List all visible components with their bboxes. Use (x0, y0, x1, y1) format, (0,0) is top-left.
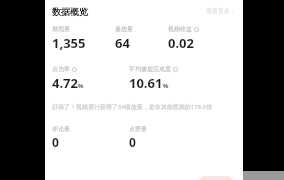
staticText: 播放量 (115, 25, 133, 33)
staticText: 0 (52, 134, 59, 150)
staticText: 数据概览 (52, 6, 88, 17)
staticText: % (78, 82, 84, 90)
button[interactable]: 点击率 (52, 65, 129, 92)
staticText: 评论量 (52, 125, 70, 133)
button[interactable]: 操作 (199, 176, 233, 180)
staticText: 点赞量 (129, 125, 147, 133)
staticText: 10.61 (129, 74, 163, 92)
button[interactable]: 展现量 (52, 25, 115, 52)
staticText: 展现量 (52, 25, 70, 33)
staticText: 0 (129, 134, 136, 150)
button[interactable]: 播放量 (115, 25, 168, 52)
staticText: 4.72 (52, 74, 78, 92)
button[interactable]: 查看更多 (204, 5, 237, 17)
staticText: 64 (115, 34, 130, 52)
button[interactable]: 点赞量 (129, 125, 237, 150)
staticText: 平均播放完成度 (129, 65, 171, 73)
staticText: 点击率 (52, 65, 70, 73)
staticText: % (163, 82, 169, 90)
staticText: 查看更多 (206, 7, 230, 15)
staticText: 视频收益 (168, 25, 192, 33)
staticText: 1,355 (52, 34, 86, 52)
staticText: 好极了！视频累计获得了64播放量，是你其他视频的178.6倍 (52, 103, 224, 111)
staticText: 0.02 (168, 34, 194, 52)
button[interactable]: 评论量 (52, 125, 129, 150)
button[interactable]: 视频收益 (168, 25, 237, 52)
button[interactable]: 平均播放完成度 (129, 65, 237, 92)
